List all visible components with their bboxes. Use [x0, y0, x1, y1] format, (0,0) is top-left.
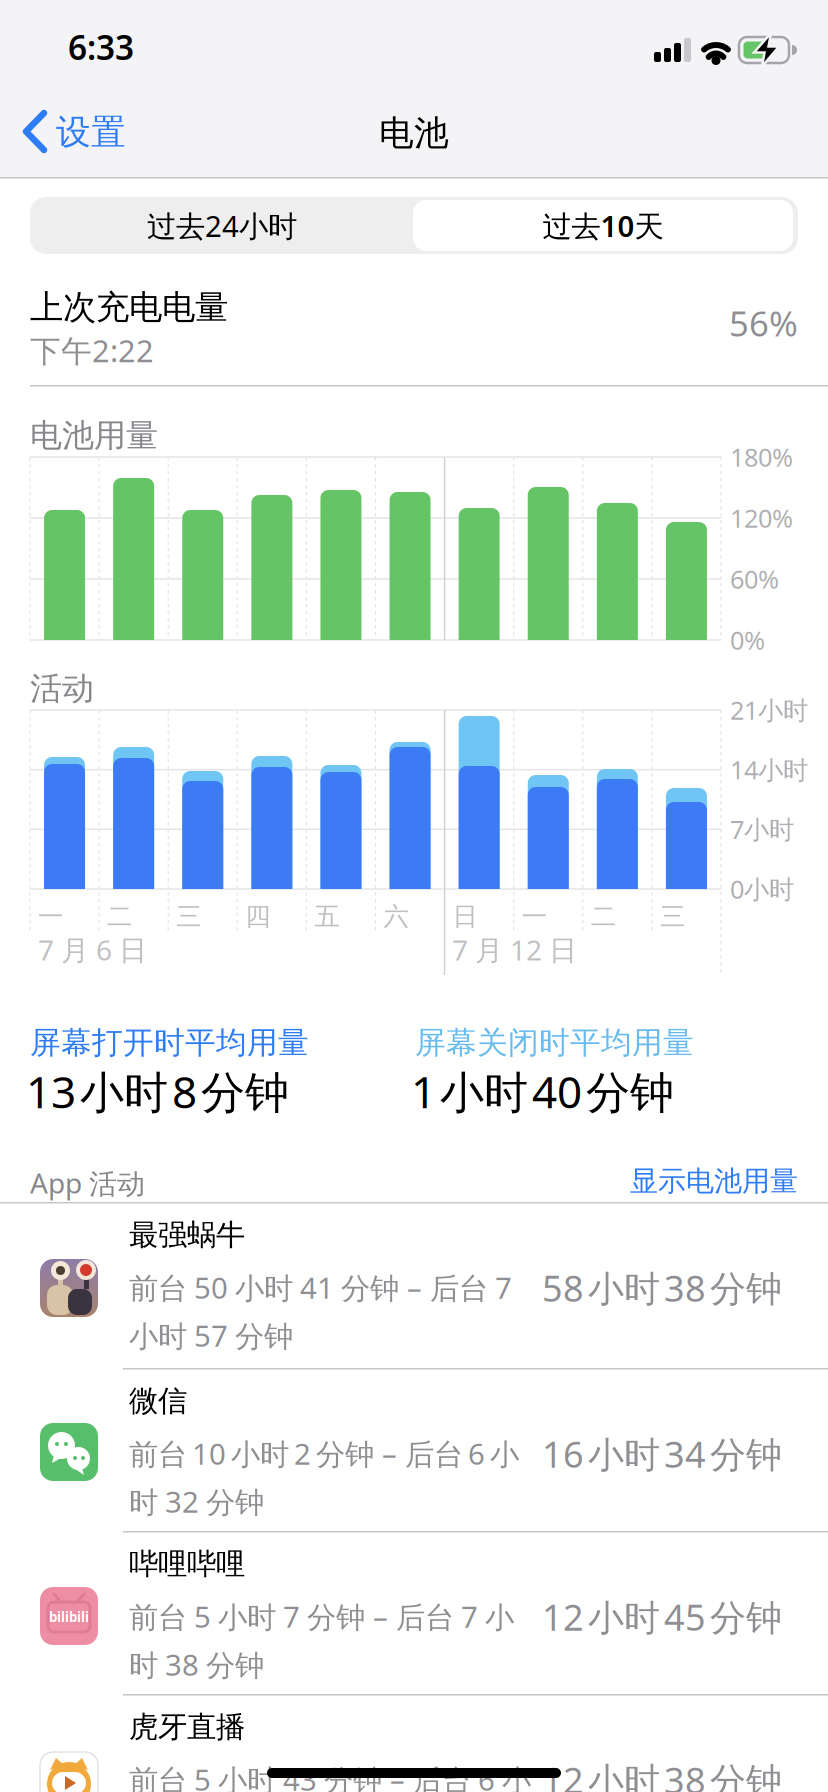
button[interactable]: bilibili — [0, 1531, 828, 1697]
staticText: 电池用量 — [30, 416, 158, 455]
staticText: 1 小时 40 分钟 — [411, 1062, 674, 1120]
staticText: 一 — [38, 901, 63, 932]
staticText: 最强蜗牛 — [129, 1217, 245, 1253]
staticText: 上次充电电量 — [30, 287, 228, 328]
staticText: 58 小时 38 分钟 — [542, 1264, 782, 1312]
staticText: 过去24小时 — [147, 206, 297, 245]
staticText: 三 — [660, 901, 685, 932]
staticText: 日 — [453, 901, 478, 932]
staticText: 显示电池用量 — [630, 1164, 798, 1198]
staticText: 7 月 6 日 — [38, 931, 147, 968]
staticText: 21小时 — [730, 693, 808, 727]
staticText: 屏幕关闭时平均用量 — [415, 1024, 694, 1062]
staticText: App 活动 — [30, 1164, 145, 1201]
staticText: 12 小时 45 分钟 — [542, 1593, 782, 1641]
staticText: 13 小时 8 分钟 — [26, 1062, 289, 1120]
staticText: 活动 — [30, 669, 94, 708]
staticText: 下午2:22 — [30, 330, 154, 371]
staticText: 前台 5 小时 43 分钟 – 后台 6 小 — [129, 1760, 531, 1792]
button[interactable]: 过去10天 — [411, 197, 795, 254]
staticText: 五 — [314, 901, 339, 932]
staticText: 56% — [729, 300, 798, 346]
staticText: 六 — [383, 901, 408, 932]
staticText: 前台 50 小时 41 分钟 – 后台 7 — [129, 1268, 512, 1307]
staticText: 小时 57 分钟 — [129, 1316, 293, 1355]
button[interactable]: 设置 — [0, 113, 200, 157]
staticText: 12 小时 38 分钟 — [542, 1756, 782, 1792]
staticText: 前台 10 小时 2 分钟 – 后台 6 小 — [129, 1434, 519, 1473]
staticText: 6:33 — [68, 25, 134, 69]
staticText: 二 — [107, 901, 132, 932]
staticText: 0小时 — [730, 872, 794, 906]
staticText: 三 — [176, 901, 201, 932]
staticText: 120% — [730, 501, 793, 535]
button[interactable]: 显示电池用量 — [498, 1164, 798, 1198]
staticText: 时 32 分钟 — [129, 1482, 264, 1521]
staticText: bilibili — [49, 1608, 89, 1626]
staticText: 7 月 12 日 — [452, 931, 577, 968]
staticText: 前台 5 小时 7 分钟 – 后台 7 小 — [129, 1597, 514, 1636]
button[interactable]: 微信 — [0, 1368, 828, 1534]
staticText: 四 — [245, 901, 270, 932]
staticText: 屏幕打开时平均用量 — [30, 1024, 309, 1062]
staticText: 0% — [730, 623, 765, 657]
button[interactable]: 最强蜗牛 — [0, 1202, 828, 1368]
staticText: 电池 — [379, 112, 449, 155]
staticText: 过去10天 — [542, 206, 663, 245]
staticText: 7小时 — [730, 812, 794, 846]
staticText: 哔哩哔哩 — [129, 1546, 245, 1582]
staticText: 虎牙直播 — [129, 1709, 245, 1745]
staticText: 时 38 分钟 — [129, 1645, 264, 1684]
staticText: 二 — [591, 901, 616, 932]
staticText: 60% — [730, 562, 779, 596]
staticText: 设置 — [56, 111, 126, 154]
button[interactable]: 虎牙直播 — [0, 1694, 828, 1792]
staticText: 180% — [730, 440, 793, 474]
staticText: 14小时 — [730, 753, 808, 786]
button[interactable]: 过去24小时 — [30, 197, 414, 254]
staticText: 一 — [522, 901, 547, 932]
staticText: 微信 — [129, 1383, 187, 1419]
staticText: 16 小时 34 分钟 — [542, 1430, 782, 1478]
